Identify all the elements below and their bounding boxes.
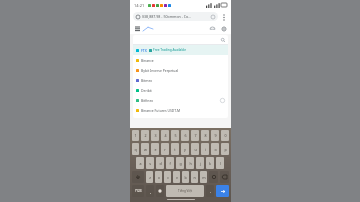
button[interactable]: FTX	[133, 45, 228, 55]
button[interactable]: f	[166, 157, 174, 169]
button[interactable]: 5	[171, 130, 179, 141]
staticText: Deribit	[141, 88, 152, 93]
button[interactable]: 2	[141, 130, 149, 141]
staticText: x	[158, 175, 160, 180]
staticText: n	[193, 175, 196, 180]
button[interactable]: Bitfinex	[133, 95, 228, 105]
button[interactable]: Settings	[219, 24, 228, 33]
staticText: b	[184, 175, 187, 180]
button[interactable]: m	[200, 171, 207, 183]
button[interactable]: a	[136, 157, 144, 169]
button[interactable]: Deribit	[133, 85, 228, 95]
staticText: r	[164, 147, 166, 152]
button[interactable]: q	[132, 143, 139, 155]
button[interactable]: l	[216, 157, 224, 169]
staticText: a	[139, 161, 142, 166]
button[interactable]: c	[164, 171, 171, 183]
button[interactable]: w	[141, 143, 149, 155]
button[interactable]: Period	[206, 185, 214, 197]
staticText: o	[214, 147, 217, 152]
button[interactable]: e	[151, 143, 159, 155]
staticText: t	[174, 147, 176, 152]
button[interactable]: v	[173, 171, 180, 183]
staticText: m	[202, 175, 206, 180]
staticText: ,	[150, 189, 151, 194]
staticText: s	[149, 161, 151, 166]
staticText: 3	[154, 133, 157, 138]
staticText: z	[149, 175, 151, 180]
staticText: .	[210, 189, 211, 194]
staticText: y	[184, 147, 186, 152]
staticText: Binance Futures USDT-M	[141, 108, 181, 113]
staticText: 4	[164, 133, 167, 138]
staticText: w	[144, 147, 147, 152]
staticText: h	[189, 161, 192, 166]
staticText: 9	[214, 133, 217, 138]
button[interactable]: Notifications	[208, 24, 217, 33]
button[interactable]: 6	[181, 130, 189, 141]
staticText: k	[209, 161, 211, 166]
staticText: 7	[194, 133, 197, 138]
staticText: v	[176, 175, 178, 180]
button[interactable]: More options	[220, 13, 228, 21]
button[interactable]: y	[181, 143, 189, 155]
staticText: 14:21	[134, 3, 145, 8]
button[interactable]: 3	[151, 130, 159, 141]
button[interactable]: Comma	[146, 185, 154, 197]
button[interactable]: g	[176, 157, 184, 169]
staticText: u	[194, 147, 197, 152]
button[interactable]: $38,887.98 - 50ommon - Co...	[133, 12, 218, 21]
staticText: q	[134, 147, 137, 152]
button[interactable]: Shift	[132, 171, 144, 183]
staticText: l	[220, 161, 221, 166]
button[interactable]: s	[146, 157, 154, 169]
button[interactable]	[133, 35, 228, 44]
button[interactable]: b	[182, 171, 189, 183]
button[interactable]: r	[161, 143, 169, 155]
button[interactable]: 4	[161, 130, 169, 141]
staticText: ?123	[135, 189, 142, 193]
button[interactable]: 8	[201, 130, 209, 141]
button[interactable]: k	[206, 157, 214, 169]
staticText: g	[179, 161, 182, 166]
staticText: j	[200, 161, 201, 166]
button[interactable]: Voice input	[156, 185, 164, 197]
staticText: d	[159, 161, 162, 166]
button[interactable]: d	[156, 157, 164, 169]
staticText: 8	[204, 133, 207, 138]
staticText: 0	[224, 133, 227, 138]
staticText: 5	[174, 133, 177, 138]
button[interactable]: Binance	[133, 55, 228, 65]
button[interactable]: Bitmex	[133, 75, 228, 85]
button[interactable]: Binance Futures USDT-M	[133, 105, 228, 115]
staticText: Bitmex	[141, 78, 153, 83]
button[interactable]: z	[146, 171, 153, 183]
button[interactable]: p	[221, 143, 229, 155]
button[interactable]: j	[196, 157, 204, 169]
button[interactable]: o	[211, 143, 219, 155]
staticText: Bitfinex	[141, 98, 154, 103]
staticText: i	[205, 147, 206, 152]
button[interactable]: 9	[211, 130, 219, 141]
button[interactable]: u	[191, 143, 199, 155]
button[interactable]: Symbols	[132, 185, 144, 197]
button[interactable]: i	[201, 143, 209, 155]
staticText: FTX	[141, 48, 147, 53]
button[interactable]: x	[155, 171, 162, 183]
staticText: Free Trading Available	[153, 48, 186, 52]
button[interactable]: Menu	[133, 25, 141, 33]
button[interactable]: h	[186, 157, 194, 169]
button[interactable]: Bybit Inverse Perpetual	[133, 65, 228, 75]
staticText: c	[167, 175, 169, 180]
button[interactable]: Enter	[216, 185, 229, 197]
button[interactable]: t	[171, 143, 179, 155]
button[interactable]: Backspace	[220, 171, 229, 183]
button[interactable]: 0	[221, 130, 229, 141]
button[interactable]: n	[191, 171, 198, 183]
button[interactable]: 1	[132, 130, 139, 141]
staticText: p	[224, 147, 227, 152]
button[interactable]: Tiếng Việt	[166, 185, 204, 197]
staticText: Binance	[141, 58, 154, 63]
button[interactable]: 7	[191, 130, 199, 141]
button[interactable]: Emoji	[209, 171, 218, 183]
